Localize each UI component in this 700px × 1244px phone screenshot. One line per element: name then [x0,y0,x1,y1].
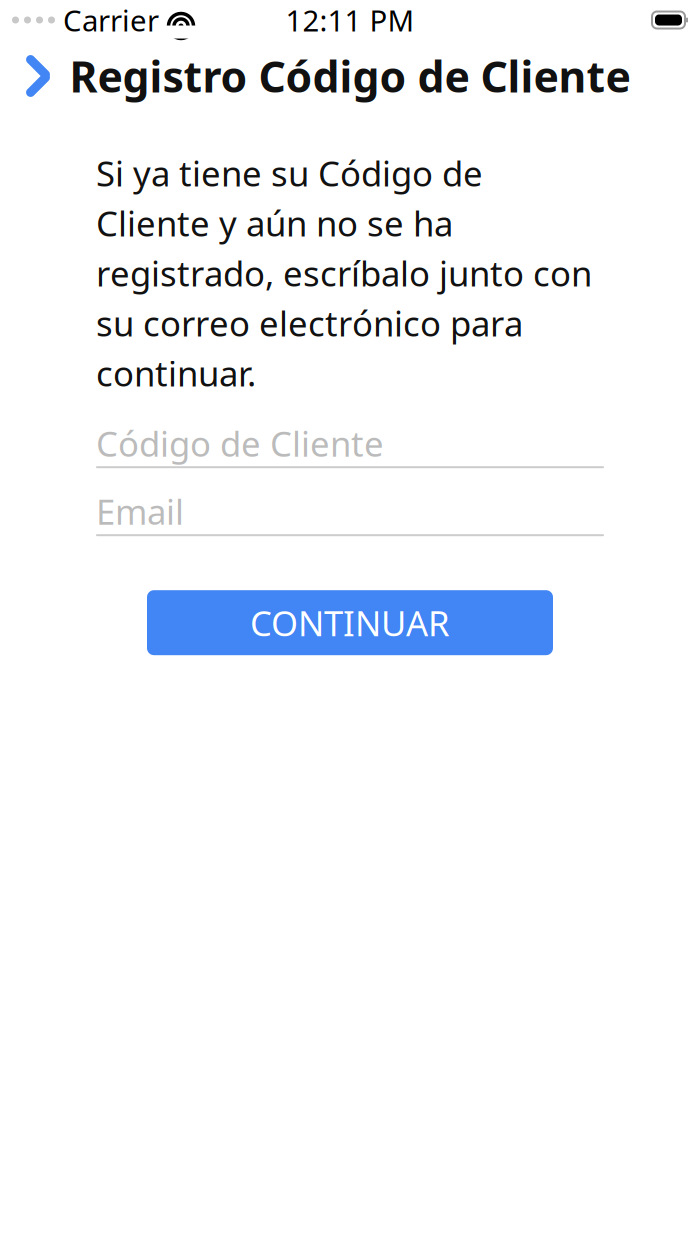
button[interactable]: Back [6,44,70,108]
staticText: CONTINUAR [250,600,450,646]
staticText: Si ya tiene su Código de Cliente y aún n… [96,150,592,396]
button[interactable]: CONTINUAR [147,590,553,655]
staticText: 12:11 PM [285,0,414,39]
staticText: Email [96,488,184,534]
staticText: Código de Cliente [96,420,384,466]
staticText: Registro Código de Cliente [69,48,630,104]
staticText: Carrier [63,0,159,39]
